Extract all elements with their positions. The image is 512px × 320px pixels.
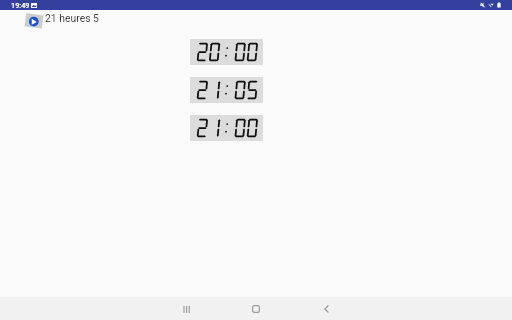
button[interactable]: 21:00 — [190, 115, 263, 141]
button[interactable]: Recent apps — [174, 299, 198, 319]
button[interactable]: 21:05 — [190, 77, 263, 103]
staticText: 21 heures 5 — [45, 12, 99, 24]
button[interactable]: 21 heures 5 — [23, 8, 99, 29]
button[interactable]: Back — [314, 299, 338, 319]
staticText: 19:49 — [11, 1, 30, 10]
button[interactable]: 20:00 — [190, 39, 263, 65]
button[interactable]: Home — [244, 299, 268, 319]
